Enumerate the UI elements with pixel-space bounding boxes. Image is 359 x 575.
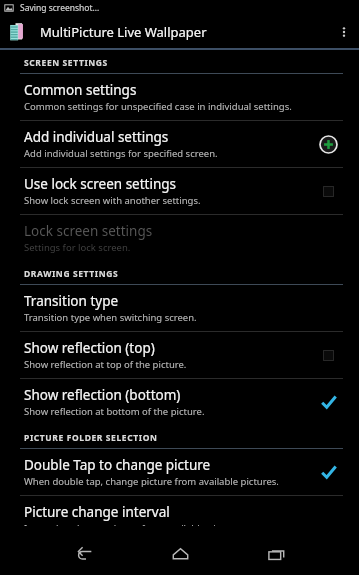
button[interactable]: Back xyxy=(36,533,132,575)
staticText: Common settings xyxy=(24,81,137,99)
staticText: Add individual settings xyxy=(24,128,169,146)
staticText: DRAWING SETTINGS xyxy=(24,268,119,280)
staticText: When double tap, change picture from ava… xyxy=(24,475,279,488)
staticText: Show lock screen with another settings. xyxy=(24,194,201,207)
button[interactable]: Add individual settings xyxy=(315,131,341,157)
staticText: Show reflection (top) xyxy=(24,339,155,357)
button[interactable]: Checked xyxy=(315,459,341,485)
staticText: Show reflection at top of the picture. xyxy=(24,358,187,371)
button[interactable]: Unchecked xyxy=(315,178,341,204)
button[interactable]: Double Tap to change picture xyxy=(0,449,359,495)
staticText: Add individual settings for specified sc… xyxy=(24,147,218,160)
button[interactable]: Unchecked xyxy=(315,342,341,368)
staticText: Transition type when switching screen. xyxy=(24,311,197,324)
button[interactable]: Show reflection (top) xyxy=(0,332,359,378)
staticText: SCREEN SETTINGS xyxy=(24,57,108,69)
button[interactable]: Transition type xyxy=(0,285,359,331)
staticText: Show reflection at bottom of the picture… xyxy=(24,405,205,418)
staticText: Picture change interval xyxy=(24,503,170,521)
button[interactable]: Recent apps xyxy=(228,533,324,575)
button[interactable]: Show reflection (bottom) xyxy=(0,379,359,425)
staticText: Use lock screen settings xyxy=(24,175,177,193)
staticText: Settings for lock screen. xyxy=(24,241,131,254)
button[interactable]: Home xyxy=(132,533,228,575)
button[interactable]: Use lock screen settings xyxy=(0,168,359,214)
button: Lock screen settings xyxy=(0,215,359,261)
button[interactable]: Picture change interval xyxy=(0,496,359,533)
staticText: PICTURE FOLDER SELECTION xyxy=(24,432,158,444)
button[interactable]: Common settings xyxy=(0,74,359,120)
staticText: Transition type xyxy=(24,292,119,310)
staticText: Lock screen settings xyxy=(24,222,153,240)
staticText: Double Tap to change picture xyxy=(24,456,211,474)
staticText: Interval to change picture from availabl… xyxy=(24,522,246,526)
button[interactable]: Add individual settings xyxy=(0,121,359,167)
staticText: Common settings for unspecified case in … xyxy=(24,100,292,113)
button[interactable]: Checked xyxy=(315,389,341,415)
staticText: Show reflection (bottom) xyxy=(24,386,181,404)
staticText: MultiPicture Live Wallpaper xyxy=(40,23,329,41)
staticText: Saving screenshot… xyxy=(20,2,100,14)
button[interactable]: More options xyxy=(329,15,359,48)
